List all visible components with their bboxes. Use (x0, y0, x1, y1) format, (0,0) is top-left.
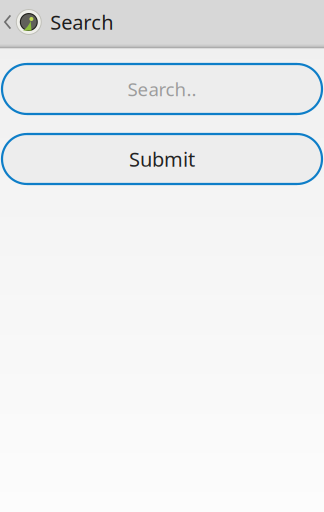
button[interactable]: Back (0, 0, 44, 44)
button[interactable]: Submit (2, 134, 322, 184)
button[interactable]: Search.. (2, 64, 322, 114)
staticText: Search (50, 9, 113, 35)
staticText: Search.. (127, 77, 196, 101)
staticText: Submit (129, 146, 195, 172)
